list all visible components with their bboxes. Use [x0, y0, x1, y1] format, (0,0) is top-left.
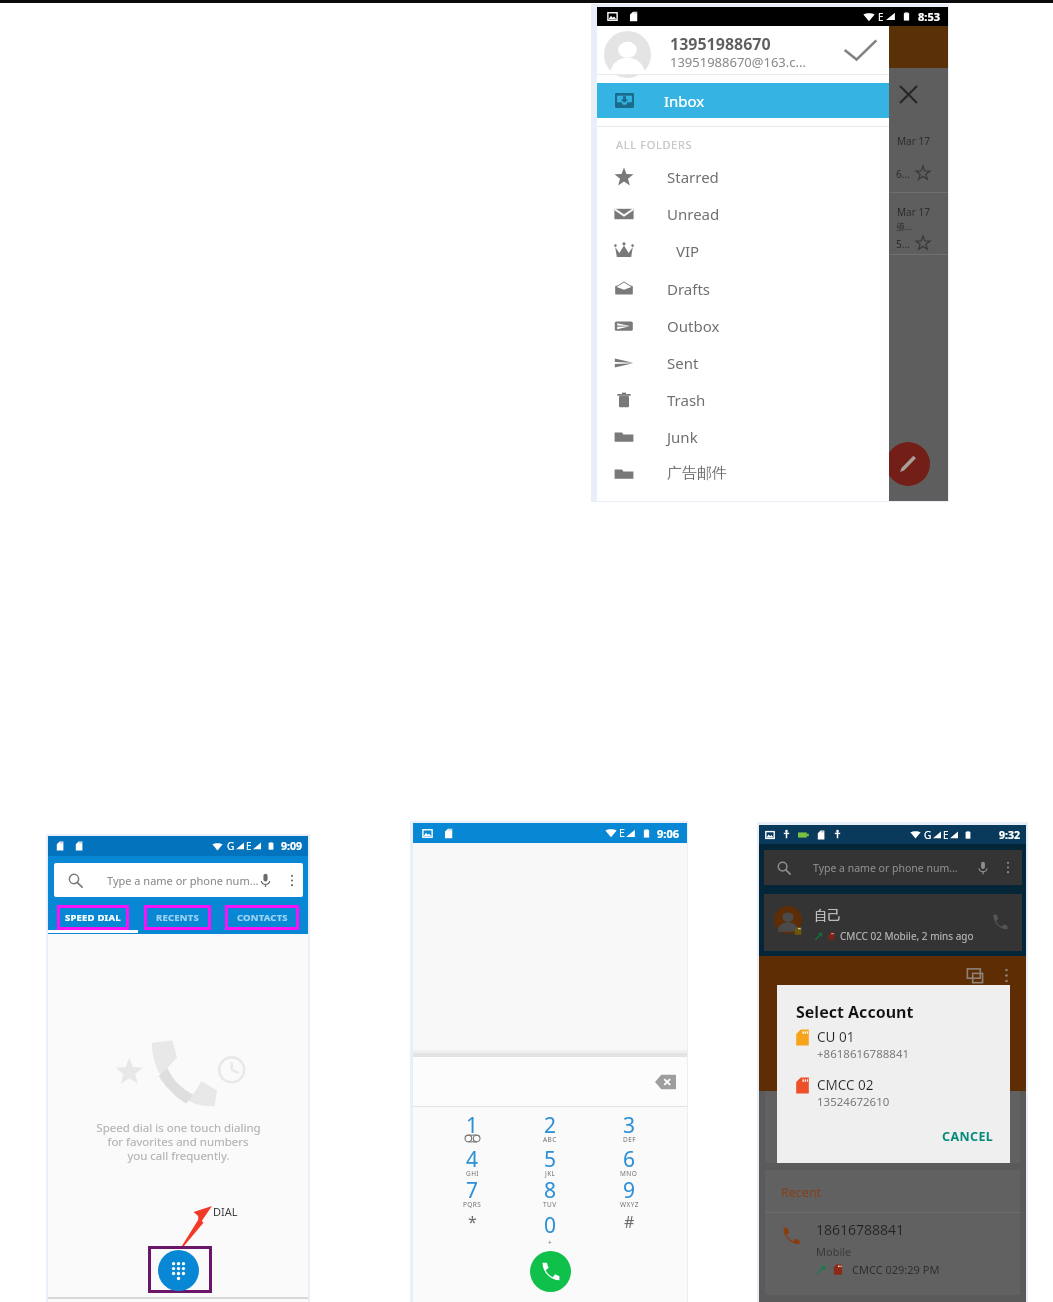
staticText: DEF [623, 1135, 636, 1144]
staticText: + [548, 1238, 553, 1247]
staticText: 8:53 [918, 9, 940, 24]
button[interactable]: Dial pad [158, 1250, 199, 1291]
staticText: GHI [466, 1169, 479, 1178]
staticText: E [943, 828, 949, 842]
staticText: Unread [667, 204, 720, 224]
staticText: 广告邮件 [667, 464, 727, 483]
staticText: 13951988670@163.c... [670, 53, 806, 71]
staticText: * [468, 1211, 477, 1233]
staticText: 6 [623, 1145, 636, 1171]
staticText: E [619, 826, 625, 840]
button[interactable]: 13951988670 [597, 26, 889, 74]
staticText: 3 [623, 1111, 636, 1137]
staticText: PQRS [463, 1200, 482, 1209]
staticText: Type a name or phone num... [107, 873, 259, 888]
staticText: # [624, 1211, 635, 1233]
staticText: CONTACTS [237, 911, 288, 924]
staticText: Trash [667, 390, 706, 410]
button[interactable]: 2 [524, 1111, 576, 1144]
button[interactable]: 4 [446, 1145, 498, 1178]
button[interactable]: Type a name or phone num... [764, 850, 1022, 885]
button[interactable]: 自己 [764, 894, 1022, 951]
staticText: 4 [466, 1145, 479, 1171]
staticText: ALL FOLDERS [616, 137, 693, 152]
staticText: Speed dial is one touch dialing [96, 1120, 261, 1136]
button[interactable]: Drafts [597, 270, 889, 307]
staticText: 9 [623, 1176, 636, 1202]
staticText: VIP [676, 241, 700, 261]
button[interactable]: Inbox [597, 83, 889, 118]
staticText: Mar 17 [897, 134, 930, 148]
button[interactable]: 7 [446, 1176, 498, 1209]
staticText: Junk [667, 427, 698, 447]
button[interactable]: CANCEL [937, 1125, 999, 1147]
staticText: 9:06 [657, 826, 679, 841]
button[interactable]: Trash [597, 381, 889, 418]
staticText: ABC [543, 1135, 557, 1144]
button[interactable]: Type a name or phone num... [54, 863, 303, 897]
button[interactable]: Compose [886, 442, 930, 486]
staticText: CMCC 02 [817, 1076, 874, 1094]
staticText: Inbox [664, 91, 705, 111]
staticText: E [878, 10, 884, 24]
button[interactable]: Merge calls [961, 962, 992, 989]
staticText: 7 [466, 1176, 479, 1202]
button[interactable]: 6 [603, 1145, 655, 1178]
button[interactable]: 1 [446, 1111, 498, 1144]
button[interactable]: RECENTS [144, 905, 211, 930]
button[interactable]: VIP [597, 232, 889, 269]
staticText: Select Account [796, 1001, 914, 1023]
button[interactable]: * [446, 1211, 498, 1244]
button[interactable]: 3 [603, 1111, 655, 1144]
staticText: WXYZ [620, 1200, 639, 1209]
staticText: JKL [545, 1169, 556, 1178]
staticText: 8 [544, 1176, 557, 1202]
button[interactable]: Close [894, 80, 923, 109]
button[interactable]: Switch account [838, 33, 883, 67]
button[interactable]: Call contact [984, 906, 1016, 938]
button[interactable]: 8 [524, 1176, 576, 1209]
staticText: 5... [896, 237, 910, 251]
staticText: TUV [543, 1200, 557, 1209]
staticText: you call frequently. [127, 1148, 230, 1164]
button[interactable]: CONTACTS [225, 905, 299, 930]
staticText: 9:32 [999, 828, 1020, 842]
staticText: 2 [544, 1111, 557, 1137]
button[interactable]: Junk [597, 418, 889, 455]
staticText: SPEED DIAL [65, 911, 121, 924]
staticText: CU 01 [817, 1028, 855, 1046]
button[interactable]: More options [996, 962, 1017, 989]
staticText: for favorites and numbers [107, 1134, 249, 1150]
button[interactable]: 0 [524, 1211, 576, 1244]
button[interactable]: 5 [524, 1145, 576, 1178]
button[interactable]: 9 [603, 1176, 655, 1209]
staticText: 9:09 [281, 839, 302, 853]
staticText: G [924, 828, 932, 842]
staticText: Recent [781, 1184, 822, 1201]
button[interactable]: Call [530, 1251, 571, 1292]
staticText: Mar 17 [897, 205, 930, 219]
button[interactable]: Sent [597, 344, 889, 381]
button[interactable]: Backspace [653, 1073, 677, 1091]
staticText: Mobile [816, 1244, 852, 1259]
staticText: RECENTS [156, 911, 199, 924]
staticText: DIAL [213, 1204, 238, 1219]
staticText: 13524672610 [817, 1094, 890, 1110]
button[interactable]: Starred [597, 158, 889, 195]
staticText: Type a name or phone num... [813, 861, 958, 875]
staticText: Starred [667, 167, 719, 187]
staticText: 5 [544, 1145, 557, 1171]
staticText: 亟... [896, 220, 913, 232]
button[interactable]: Outbox [597, 307, 889, 344]
staticText: CMCC 02 Mobile, 2 mins ago [840, 929, 974, 943]
staticText: E [246, 839, 252, 853]
button[interactable]: 广告邮件 [597, 455, 889, 492]
staticText: 1 [466, 1111, 479, 1137]
button[interactable]: Unread [597, 195, 889, 232]
staticText: CANCEL [942, 1128, 994, 1145]
button[interactable]: SPEED DIAL [57, 905, 129, 930]
button[interactable]: # [603, 1211, 655, 1244]
staticText: G [227, 839, 235, 853]
staticText: Drafts [667, 279, 711, 299]
